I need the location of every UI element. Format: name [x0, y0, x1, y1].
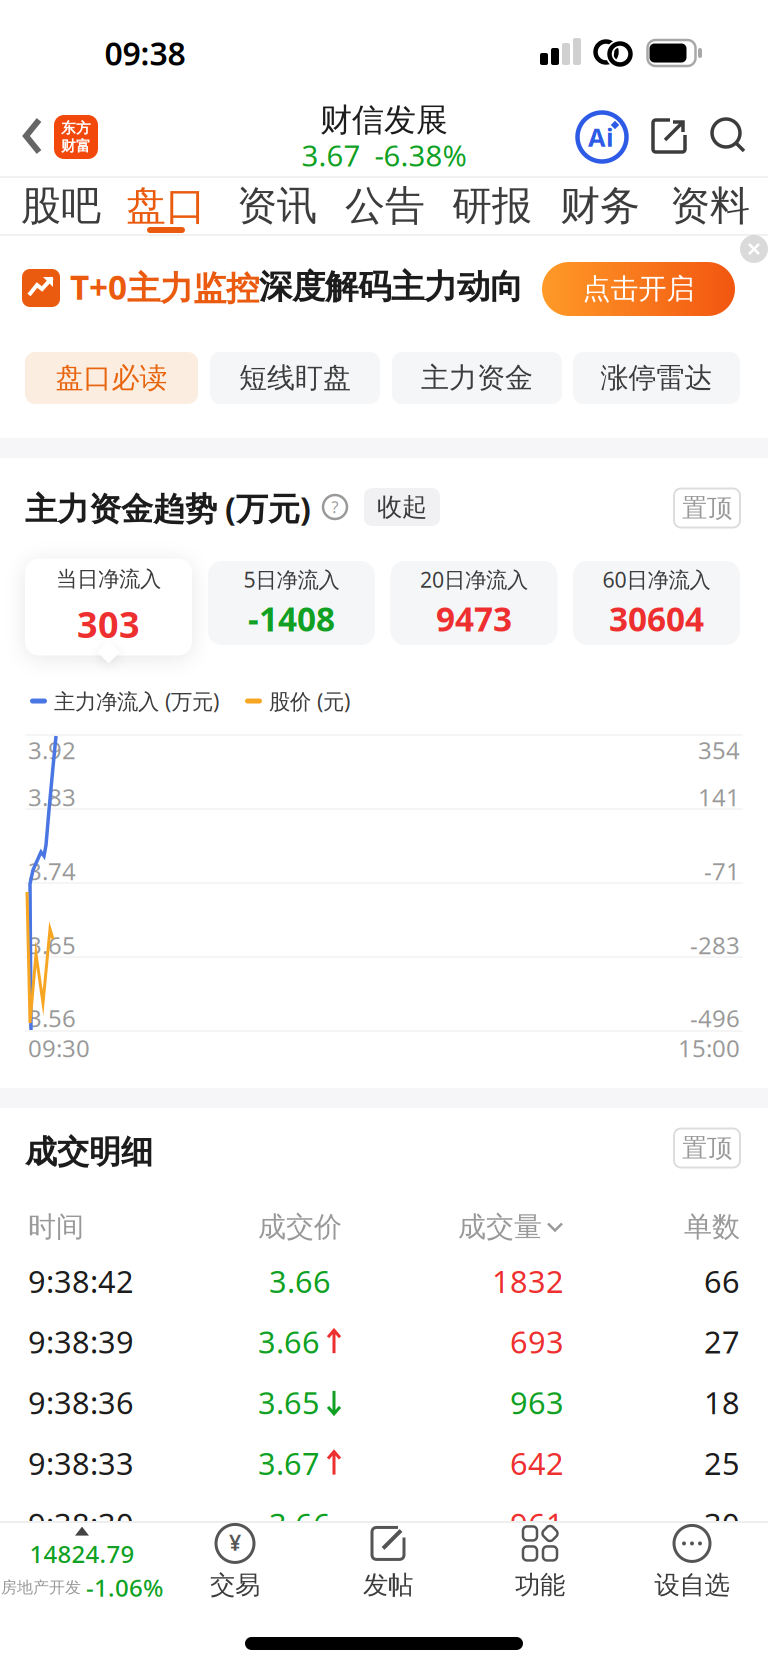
- staticText: 股价 (元): [269, 687, 350, 715]
- staticText: 单数: [684, 1210, 740, 1244]
- staticText: 15:00: [678, 1032, 740, 1064]
- button[interactable]: 盘口: [126, 181, 206, 230]
- button[interactable]: 资料: [670, 181, 750, 230]
- button[interactable]: Search: [711, 118, 747, 154]
- staticText: 27: [704, 1321, 740, 1362]
- staticText: 141: [698, 781, 740, 813]
- staticText: -1.06%: [86, 1571, 163, 1603]
- staticText: 9:38:39: [28, 1321, 134, 1362]
- staticText: -283: [690, 929, 740, 961]
- staticText: 盘口必读: [55, 361, 167, 395]
- button[interactable]: 5日净流入: [208, 561, 375, 645]
- staticText: 66: [704, 1261, 740, 1301]
- button[interactable]: 当日净流入: [25, 558, 192, 655]
- staticText: ¥: [229, 1528, 241, 1557]
- staticText: 设自选: [654, 1569, 729, 1600]
- button[interactable]: 成交量: [458, 1210, 564, 1244]
- staticText: 财务: [560, 181, 640, 230]
- staticText: 资讯: [237, 181, 317, 230]
- staticText: 354: [698, 734, 740, 766]
- staticText: 09:30: [28, 1032, 90, 1064]
- staticText: 3.66: [269, 1503, 331, 1544]
- staticText: 功能: [515, 1569, 565, 1600]
- staticText: 交易: [210, 1569, 260, 1600]
- staticText: 303: [77, 600, 140, 648]
- button[interactable]: AI assistant: [577, 112, 626, 161]
- staticText: 发帖: [363, 1569, 413, 1600]
- staticText: 置顶: [682, 1132, 732, 1163]
- button[interactable]: 点击开启: [542, 262, 735, 316]
- staticText: 财富: [61, 137, 91, 155]
- staticText: 9:38:33: [28, 1443, 134, 1483]
- staticText: 当日净流入: [56, 566, 161, 592]
- button[interactable]: 主力资金: [392, 352, 562, 404]
- button[interactable]: 60日净流入: [573, 561, 740, 645]
- staticText: 短线盯盘: [239, 361, 351, 395]
- staticText: 3.67: [301, 135, 360, 174]
- staticText: -1408: [248, 596, 335, 641]
- staticText: 公告: [345, 181, 425, 230]
- staticText: 961: [510, 1503, 564, 1544]
- staticText: 9:38:36: [28, 1382, 134, 1423]
- staticText: 东方: [61, 119, 91, 137]
- staticText: 收起: [377, 491, 427, 522]
- staticText: 3.56: [28, 1002, 76, 1034]
- button[interactable]: 置顶: [674, 488, 740, 527]
- button[interactable]: 公告: [345, 181, 425, 230]
- staticText: 研报: [452, 181, 532, 230]
- staticText: 5日净流入: [243, 565, 339, 593]
- staticText: 房地产开发: [1, 1578, 81, 1597]
- staticText: 主力资金: [421, 361, 533, 395]
- staticText: 30: [704, 1503, 740, 1544]
- staticText: -6.38%: [374, 135, 466, 174]
- staticText: T+0主力监控: [70, 265, 259, 309]
- button[interactable]: 发帖: [363, 1523, 413, 1600]
- button[interactable]: 资讯: [237, 181, 317, 230]
- button[interactable]: 股吧: [21, 181, 101, 230]
- staticText: 置顶: [682, 492, 732, 523]
- staticText: 20日净流入: [420, 565, 528, 593]
- button[interactable]: 短线盯盘: [210, 352, 380, 404]
- staticText: 9473: [436, 596, 512, 641]
- button[interactable]: 收起: [364, 488, 440, 526]
- button[interactable]: Close: [740, 235, 768, 263]
- button[interactable]: 功能: [515, 1523, 565, 1600]
- staticText: Ai: [588, 120, 614, 154]
- button[interactable]: 置顶: [674, 1128, 740, 1167]
- staticText: 18: [704, 1382, 740, 1423]
- staticText: 642: [510, 1443, 564, 1483]
- staticText: 点击开启: [582, 272, 694, 306]
- button[interactable]: ¥: [210, 1523, 260, 1600]
- staticText: 时间: [28, 1210, 84, 1244]
- button[interactable]: 财务: [560, 181, 640, 230]
- staticText: 3.65: [28, 929, 76, 961]
- staticText: 3.74: [28, 855, 76, 887]
- staticText: 1832: [492, 1261, 564, 1301]
- button[interactable]: 涨停雷达: [573, 352, 740, 404]
- button[interactable]: 20日净流入: [390, 561, 557, 645]
- button[interactable]: 研报: [452, 181, 532, 230]
- staticText: 3.92: [28, 734, 76, 766]
- staticText: 3.65: [258, 1382, 320, 1423]
- button[interactable]: 帮助: [323, 495, 347, 519]
- staticText: 资料: [670, 181, 750, 230]
- staticText: 盘口: [126, 181, 206, 230]
- button[interactable]: 板块指数: [1, 1527, 163, 1603]
- button[interactable]: 设自选: [654, 1523, 729, 1600]
- staticText: 963: [510, 1382, 564, 1423]
- staticText: 9:38:30: [28, 1503, 134, 1544]
- staticText: 3.66: [269, 1261, 331, 1301]
- staticText: 9:38:42: [28, 1261, 134, 1301]
- staticText: 3.66: [258, 1321, 320, 1362]
- staticText: 股吧: [21, 181, 101, 230]
- button[interactable]: Back: [23, 117, 43, 155]
- button[interactable]: Share: [651, 118, 687, 154]
- button[interactable]: 盘口必读: [25, 352, 198, 404]
- staticText: 25: [704, 1443, 740, 1483]
- staticText: 涨停雷达: [600, 361, 712, 395]
- staticText: 3.67: [258, 1443, 320, 1483]
- staticText: ?: [331, 496, 338, 518]
- staticText: 3.83: [28, 781, 76, 813]
- staticText: 主力资金趋势 (万元): [25, 487, 311, 529]
- button[interactable]: 东方财富: [54, 115, 98, 159]
